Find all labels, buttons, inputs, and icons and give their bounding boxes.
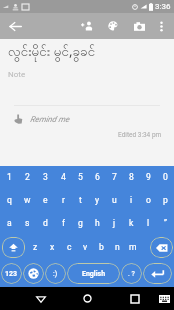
button[interactable]: k bbox=[123, 211, 140, 234]
staticText: j bbox=[113, 218, 116, 228]
staticText: q bbox=[7, 195, 12, 205]
button[interactable]: 9 bbox=[140, 166, 157, 188]
button[interactable]: Punctuation bbox=[121, 263, 142, 284]
button[interactable]: Home bbox=[77, 287, 97, 310]
staticText: l bbox=[147, 218, 150, 228]
button[interactable]: m bbox=[125, 234, 141, 260]
staticText: Edited 3:34 pm bbox=[118, 131, 162, 139]
button[interactable]: Collaborator bbox=[74, 13, 99, 39]
button[interactable]: u bbox=[106, 188, 123, 211]
button[interactable]: Shift bbox=[0, 234, 27, 260]
button[interactable]: c bbox=[61, 234, 77, 260]
button[interactable]: Symbols bbox=[1, 263, 22, 284]
staticText: t bbox=[79, 195, 82, 205]
button[interactable]: 1 bbox=[0, 166, 18, 188]
button[interactable]: f bbox=[54, 211, 72, 234]
staticText: 7 bbox=[112, 172, 117, 182]
staticText: Remind me bbox=[30, 115, 70, 124]
button[interactable]: i bbox=[123, 188, 140, 211]
button[interactable]: 6 bbox=[89, 166, 106, 188]
button[interactable]: 3 bbox=[36, 166, 54, 188]
button[interactable]: q bbox=[0, 188, 18, 211]
staticText: c bbox=[67, 242, 72, 252]
button[interactable]: Delete bbox=[141, 234, 174, 260]
button[interactable]: t bbox=[72, 188, 89, 211]
button[interactable]: 0 bbox=[157, 166, 174, 188]
button[interactable]: e bbox=[36, 188, 54, 211]
button[interactable]: 8 bbox=[123, 166, 140, 188]
button[interactable]: w bbox=[18, 188, 36, 211]
button[interactable]: p bbox=[157, 188, 174, 211]
button[interactable]: d bbox=[36, 211, 54, 234]
button[interactable]: b bbox=[93, 234, 109, 260]
staticText: y bbox=[95, 195, 100, 205]
button[interactable]: v bbox=[77, 234, 93, 260]
staticText: r bbox=[62, 195, 65, 205]
staticText: n bbox=[115, 242, 120, 252]
button[interactable]: More options bbox=[151, 13, 172, 39]
button[interactable]: z bbox=[27, 234, 44, 260]
button[interactable]: Change color bbox=[100, 13, 125, 39]
button[interactable]: g bbox=[72, 211, 89, 234]
button[interactable]: Hide keyboard bbox=[155, 287, 174, 310]
staticText: w bbox=[24, 195, 31, 205]
button[interactable]: Navigate up bbox=[3, 13, 27, 39]
staticText: b bbox=[99, 242, 104, 252]
button[interactable]: l bbox=[140, 211, 157, 234]
staticText: 6 bbox=[95, 172, 100, 182]
button[interactable]: a bbox=[0, 211, 18, 234]
button[interactable]: n bbox=[109, 234, 125, 260]
button[interactable]: Add image bbox=[127, 13, 152, 39]
button[interactable]: r bbox=[54, 188, 72, 211]
staticText: s bbox=[25, 218, 30, 228]
staticText: o bbox=[146, 195, 151, 205]
button[interactable]: 7 bbox=[106, 166, 123, 188]
staticText: i bbox=[130, 195, 133, 205]
staticText: ’’ bbox=[164, 218, 167, 228]
button[interactable]: ’’ bbox=[157, 211, 174, 234]
staticText: 123 bbox=[5, 270, 18, 278]
button[interactable]: English bbox=[67, 263, 120, 284]
staticText: x bbox=[50, 242, 55, 252]
staticText: 9 bbox=[146, 172, 151, 182]
staticText: လွင်းမိုင်း မွင်,ခွခင် bbox=[8, 42, 96, 63]
staticText: z bbox=[33, 242, 38, 252]
button[interactable]: 2 bbox=[18, 166, 36, 188]
button[interactable]: 4 bbox=[54, 166, 72, 188]
staticText: . ? bbox=[128, 270, 135, 278]
staticText: 1 bbox=[7, 172, 12, 182]
staticText: p bbox=[163, 195, 168, 205]
staticText: v bbox=[83, 242, 88, 252]
staticText: :) bbox=[53, 270, 58, 278]
button[interactable]: Back bbox=[31, 287, 51, 310]
staticText: 0 bbox=[163, 172, 168, 182]
staticText: 5 bbox=[78, 172, 83, 182]
button[interactable]: Recent apps bbox=[125, 287, 145, 310]
staticText: k bbox=[129, 218, 134, 228]
button[interactable]: Change language bbox=[23, 263, 44, 284]
staticText: d bbox=[43, 218, 48, 228]
staticText: m bbox=[129, 242, 137, 252]
button[interactable]: Emoji bbox=[45, 263, 66, 284]
button[interactable]: h bbox=[89, 211, 106, 234]
button[interactable]: Remind me bbox=[0, 108, 174, 130]
staticText: a bbox=[7, 218, 12, 228]
button[interactable]: x bbox=[44, 234, 61, 260]
button[interactable]: y bbox=[89, 188, 106, 211]
button[interactable]: s bbox=[18, 211, 36, 234]
staticText: 3 bbox=[43, 172, 48, 182]
button[interactable]: j bbox=[106, 211, 123, 234]
staticText: u bbox=[112, 195, 117, 205]
staticText: English bbox=[82, 270, 106, 278]
staticText: h bbox=[95, 218, 100, 228]
staticText: Note bbox=[8, 70, 26, 79]
button[interactable]: Enter bbox=[143, 263, 172, 284]
button[interactable]: o bbox=[140, 188, 157, 211]
staticText: 4 bbox=[61, 172, 66, 182]
staticText: 2 bbox=[25, 172, 30, 182]
staticText: 3:36 bbox=[155, 2, 171, 11]
staticText: e bbox=[43, 195, 48, 205]
staticText: 8 bbox=[129, 172, 134, 182]
staticText: f bbox=[62, 218, 65, 228]
button[interactable]: 5 bbox=[72, 166, 89, 188]
